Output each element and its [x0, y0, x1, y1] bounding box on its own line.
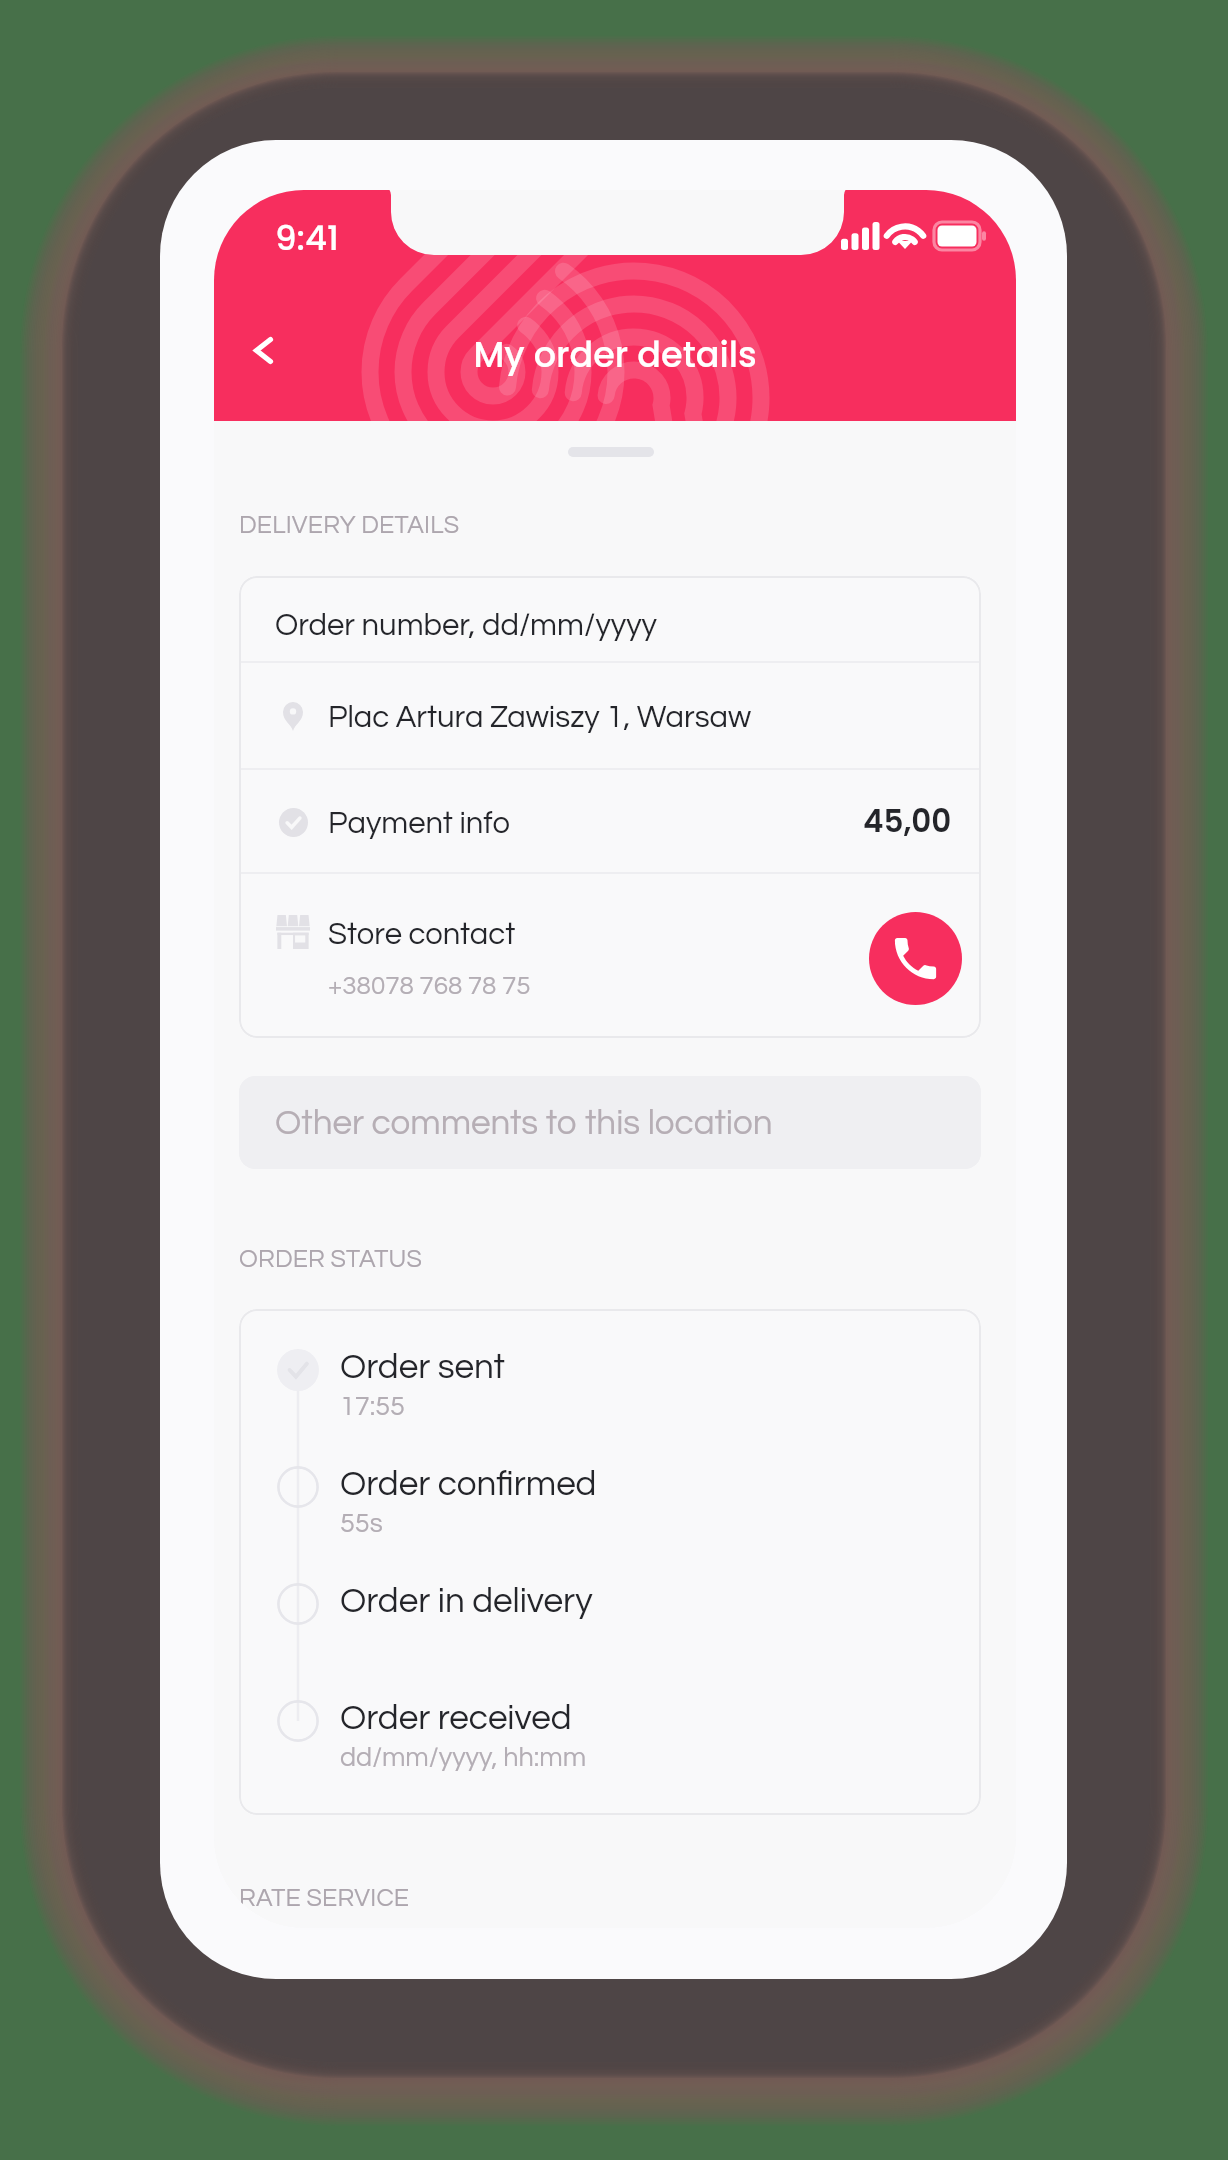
button[interactable]: Other comments to this location — [239, 1076, 981, 1169]
staticText: Order received — [340, 1700, 572, 1736]
button[interactable]: Payment info — [239, 768, 981, 872]
button[interactable]: Order in delivery — [239, 1559, 981, 1659]
button[interactable]: Order received — [239, 1676, 981, 1776]
staticText: 45,00 — [863, 799, 952, 842]
staticText: dd/mm/yyyy, hh:mm — [340, 1744, 587, 1772]
staticText: Store contact — [328, 919, 516, 951]
staticText: +38078 768 78 75 — [328, 973, 531, 1000]
button[interactable]: Order sent — [239, 1325, 981, 1425]
button[interactable]: Store contact — [239, 872, 981, 1038]
button[interactable]: Order number, dd/mm/yyyy — [239, 576, 981, 661]
staticText: Payment info — [328, 808, 510, 840]
button[interactable]: Plac Artura Zawiszy 1, Warsaw — [239, 661, 981, 768]
staticText: Order in delivery — [340, 1583, 593, 1619]
staticText: RATE SERVICE — [239, 1885, 410, 1911]
button[interactable]: Order confirmed — [239, 1442, 981, 1542]
staticText: 9:41 — [275, 214, 339, 262]
staticText: DELIVERY DETAILS — [239, 512, 460, 538]
staticText: Other comments to this location — [275, 1105, 773, 1141]
staticText: Order number, dd/mm/yyyy — [275, 610, 658, 642]
staticText: Order sent — [340, 1349, 505, 1385]
button[interactable]: Call store — [869, 912, 962, 1005]
staticText: My order details — [214, 330, 1016, 379]
staticText: Order confirmed — [340, 1466, 597, 1502]
staticText: ORDER STATUS — [239, 1246, 423, 1272]
staticText: 55s — [340, 1510, 383, 1538]
staticText: 17:55 — [340, 1393, 405, 1421]
staticText: Plac Artura Zawiszy 1, Warsaw — [328, 702, 752, 734]
button[interactable]: Back — [223, 310, 303, 390]
